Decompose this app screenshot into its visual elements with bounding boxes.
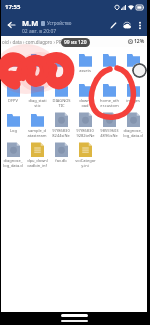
button[interactable]: Scroll handle [132,63,147,78]
button[interactable]: home_oth [97,80,121,108]
button[interactable]: assets [73,50,97,73]
staticText: home_oth [100,98,119,103]
staticText: log_data.d [3,163,23,168]
staticText: 17:55 [5,3,21,11]
staticText: 4896isNe [100,133,118,138]
staticText: 02 авг. в 20:07 [22,28,57,35]
staticText: diagnose_ [123,128,143,133]
button[interactable]: diagnose_ [121,110,145,138]
staticText: dpu_downl [27,158,48,163]
button[interactable]: diagnose_ [1,140,25,168]
staticText: er.custom [100,103,119,108]
staticText: 97f86830 [52,128,70,133]
staticText: y.ini [81,163,89,168]
button[interactable]: Back [3,17,19,33]
button[interactable]: voiCategor [73,140,97,168]
staticText: log_data.d [123,133,143,138]
button[interactable]: Edit [106,18,120,32]
staticText: images [126,98,140,103]
staticText: oadbin_inf [27,163,47,168]
staticText: stic [34,103,41,108]
staticText: 9282teNe [76,133,95,138]
staticText: sample_d [28,128,46,133]
button[interactable] [49,50,73,68]
staticText: 98559603 [100,128,119,133]
button[interactable]: DFPV [1,80,25,103]
staticText: Log [10,128,17,133]
button[interactable]: 97f86830 [49,110,73,138]
staticText: 8244siNe [52,133,70,138]
staticText: 60 [107,68,112,73]
staticText: 97f86830 [76,128,94,133]
staticText: downl [79,98,91,103]
staticText: fav.db [55,158,67,163]
staticText: 12% [134,38,145,45]
button[interactable]: fav.db [49,140,73,163]
button[interactable]: sample_d [25,110,49,138]
button[interactable]: Cloud upload [120,18,134,32]
button[interactable]: downl [73,80,97,108]
staticText: Устройство [47,20,72,26]
button[interactable]: 60 [97,50,121,73]
staticText: DFPV [8,98,18,103]
button[interactable]: More options [134,19,146,31]
staticText: assets [79,68,91,73]
button[interactable]: diag_stati [25,80,49,108]
button[interactable]: Home [61,314,88,317]
staticText: oid › data › com.diagpro › PRO [2,39,66,45]
staticText: diagnose_ [3,158,23,163]
staticText: DIAGNOS [52,98,71,103]
button[interactable]: DIAGNOS [49,80,73,108]
staticText: oad [81,103,89,108]
button[interactable]: Log [1,110,25,133]
staticText: diag_stati [28,98,47,103]
staticText: voiCategor [75,158,96,163]
button[interactable]: images [121,80,145,103]
staticText: 99 из 120 [64,39,87,46]
button[interactable] [25,50,49,68]
button[interactable] [121,50,145,68]
staticText: TIC [58,103,65,108]
staticText: atastream [27,133,47,138]
button[interactable]: 97f86830 [73,110,97,138]
button[interactable]: 98559603 [97,110,121,138]
button[interactable] [1,50,25,68]
staticText: M.M [22,18,39,28]
button[interactable]: dpu_downl [25,140,49,168]
